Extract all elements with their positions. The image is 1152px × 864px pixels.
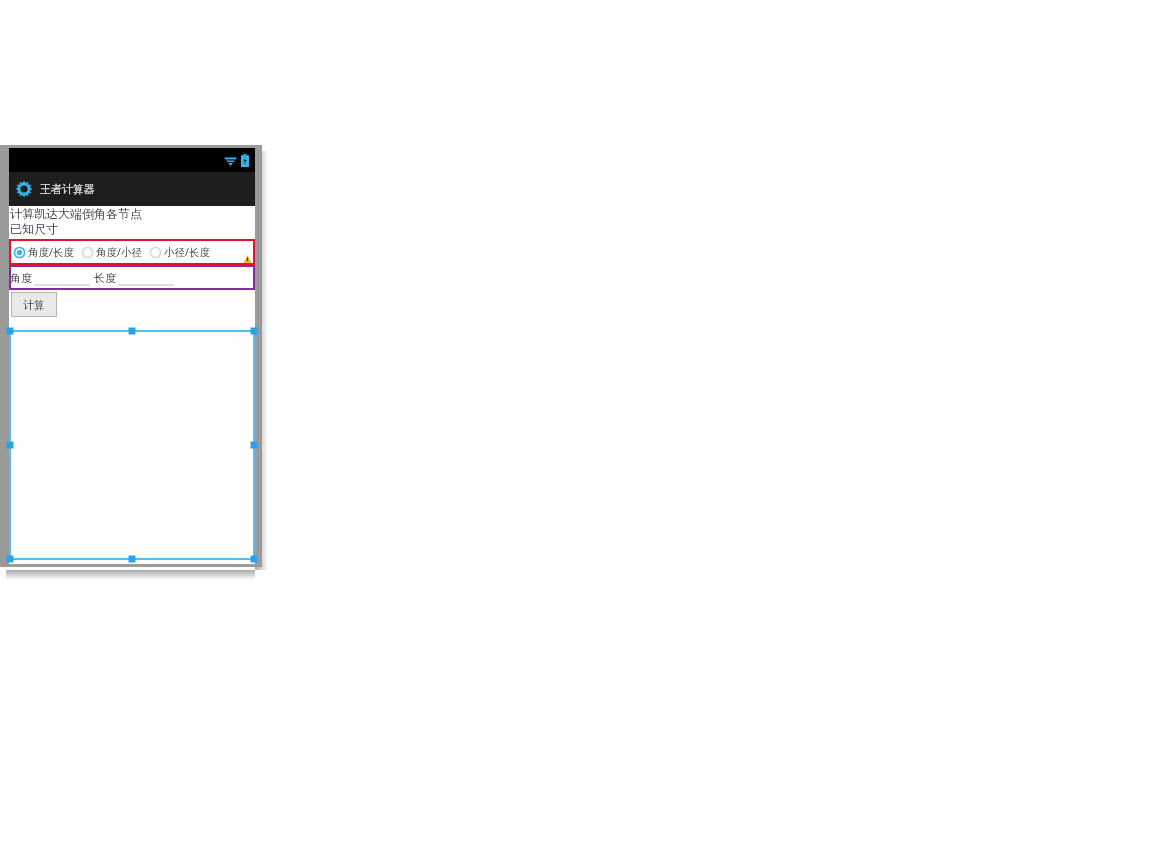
button[interactable]: Input field [118, 269, 174, 287]
staticText: 角度/长度 [28, 245, 74, 259]
button[interactable]: 计算 [11, 292, 57, 317]
staticText: 小径/长度 [164, 245, 210, 259]
other: Wi-Fi [224, 155, 237, 166]
staticText: 已知尺寸 [10, 221, 58, 236]
other: App icon [15, 180, 33, 198]
staticText: 王者计算器 [40, 182, 95, 196]
button[interactable]: 小径/长度 [149, 244, 211, 260]
staticText: 角度 [10, 271, 32, 285]
staticText: 角度/小径 [96, 245, 142, 259]
button[interactable]: Input field [34, 269, 90, 287]
button[interactable]: 角度/小径 [81, 244, 143, 260]
button[interactable]: 角度/长度 [13, 244, 75, 260]
staticText: 长度 [94, 271, 116, 285]
staticText: 计算凯达大端倒角各节点 [10, 206, 142, 221]
staticText: 计算 [23, 298, 45, 312]
other: Battery charging [241, 154, 249, 167]
